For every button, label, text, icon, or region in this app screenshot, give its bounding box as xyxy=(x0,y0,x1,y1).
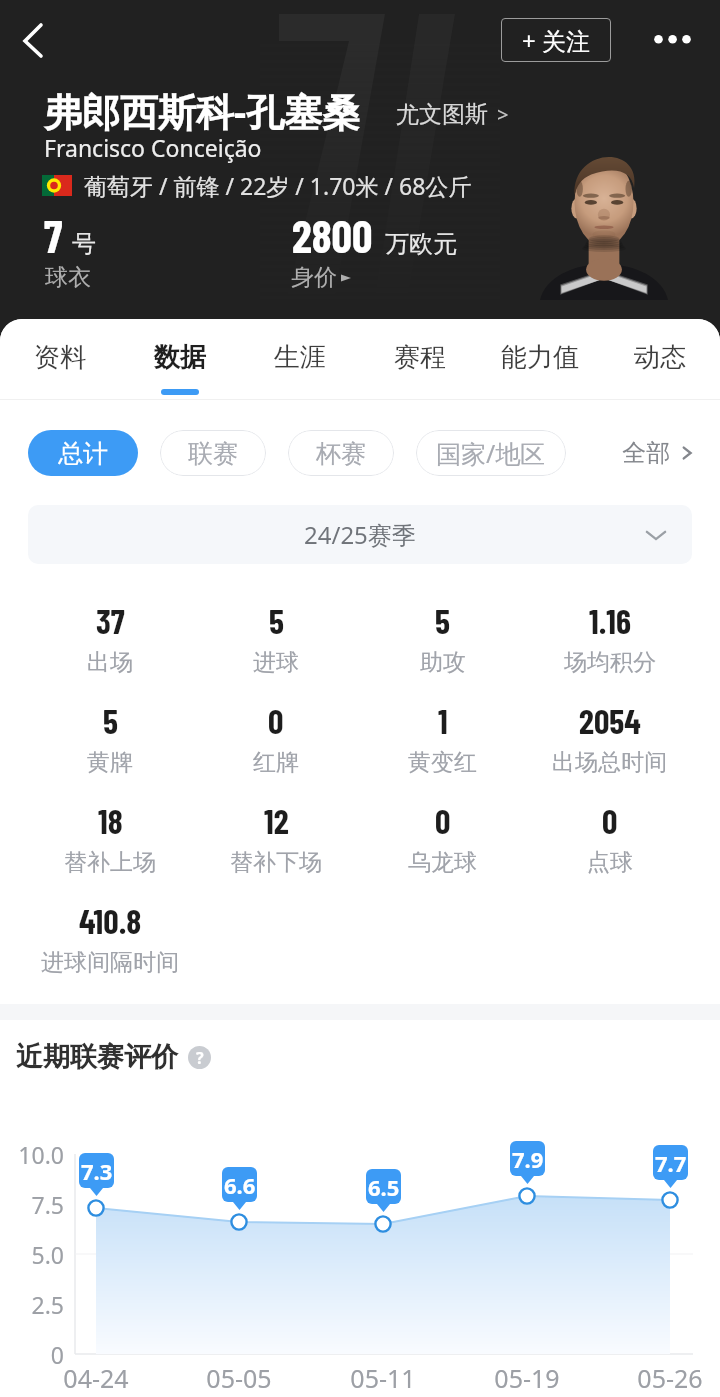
staticText: 6.5 xyxy=(368,1172,400,1202)
staticText: 1 xyxy=(438,700,448,741)
button[interactable]: 尤文图斯 xyxy=(396,100,509,129)
staticText: 乌龙球 xyxy=(408,848,477,877)
staticText: 0 xyxy=(268,700,284,741)
staticText: 黄牌 xyxy=(87,748,133,777)
staticText: 10.0 xyxy=(0,1139,64,1170)
staticText: 2.5 xyxy=(0,1289,64,1320)
staticText: 动态 xyxy=(634,341,686,374)
staticText: 0 xyxy=(435,800,451,841)
staticText: 数据 xyxy=(154,341,206,374)
staticText: 7.9 xyxy=(512,1144,544,1174)
staticText: 2800 xyxy=(292,208,373,262)
staticText: 尤文图斯 xyxy=(396,100,488,129)
staticText: 资料 xyxy=(34,341,86,374)
staticText: 410.8 xyxy=(79,900,142,941)
staticText: 黄变红 xyxy=(408,748,477,777)
staticText: 5 xyxy=(435,600,450,641)
staticText: 出场 xyxy=(87,648,133,677)
staticText: 05-05 xyxy=(184,1361,294,1395)
staticText: ? xyxy=(196,1047,204,1069)
staticText: 5.0 xyxy=(0,1239,64,1270)
staticText: 2054 xyxy=(579,700,641,741)
staticText: 球衣 xyxy=(45,263,91,292)
button[interactable]: 杯赛 xyxy=(288,430,394,476)
button[interactable]: 联赛 xyxy=(160,430,266,476)
button[interactable]: 赛程 xyxy=(360,319,480,400)
staticText: 04-24 xyxy=(41,1361,151,1395)
staticText: 18 xyxy=(98,800,123,841)
staticText: + 关注 xyxy=(522,24,590,57)
staticText: 全部 xyxy=(622,438,670,468)
staticText: 6.6 xyxy=(224,1170,256,1200)
staticText: 替补下场 xyxy=(230,848,322,877)
staticText: 进球 xyxy=(253,648,299,677)
button[interactable]: 总计 xyxy=(28,430,138,476)
staticText: 能力值 xyxy=(501,341,579,374)
button[interactable]: 国家/地区 xyxy=(416,430,566,476)
staticText: 05-26 xyxy=(615,1361,720,1395)
button[interactable]: Back xyxy=(3,17,49,63)
staticText: 身价 xyxy=(291,263,337,292)
staticText: 联赛 xyxy=(188,438,238,469)
staticText: > xyxy=(497,101,509,128)
staticText: 7.7 xyxy=(655,1148,687,1178)
button[interactable]: 动态 xyxy=(600,319,720,400)
staticText: 7 xyxy=(44,208,63,262)
staticText: 红牌 xyxy=(253,748,299,777)
staticText: 05-11 xyxy=(328,1361,438,1395)
staticText: 进球间隔时间 xyxy=(41,948,179,977)
staticText: 5 xyxy=(103,700,118,741)
staticText: 场均积分 xyxy=(564,648,656,677)
staticText: 近期联赛评价 xyxy=(16,1040,178,1074)
staticText: 出场总时间 xyxy=(552,748,667,777)
staticText: 0 xyxy=(602,800,618,841)
staticText: 弗郎西斯科-孔塞桑 xyxy=(44,85,361,137)
staticText: 赛程 xyxy=(394,341,446,374)
button[interactable]: 24/25赛季 xyxy=(28,505,692,564)
staticText: 37 xyxy=(96,600,125,641)
staticText: 12 xyxy=(264,800,289,841)
button[interactable]: + 关注 xyxy=(501,18,611,62)
staticText: 5 xyxy=(269,600,284,641)
staticText: 7.5 xyxy=(0,1189,64,1220)
staticText: Francisco Conceição xyxy=(44,132,262,163)
staticText: 05-19 xyxy=(472,1361,582,1395)
staticText: 号 xyxy=(72,229,96,259)
staticText: 点球 xyxy=(587,848,633,877)
button[interactable]: 能力值 xyxy=(480,319,600,400)
staticText: 国家/地区 xyxy=(436,436,546,470)
staticText: 替补上场 xyxy=(64,848,156,877)
button[interactable]: 资料 xyxy=(0,319,120,400)
button[interactable]: 生涯 xyxy=(240,319,360,400)
staticText: 24/25赛季 xyxy=(304,518,416,551)
button[interactable]: More options xyxy=(644,15,702,63)
staticText: 葡萄牙 / 前锋 / 22岁 / 1.70米 / 68公斤 xyxy=(84,170,472,201)
staticText: 生涯 xyxy=(274,341,326,374)
staticText: 7.3 xyxy=(81,1156,113,1186)
button[interactable]: 数据 xyxy=(120,319,240,400)
staticText: 万欧元 xyxy=(385,229,457,259)
button[interactable]: 全部 xyxy=(622,430,696,476)
button[interactable]: 身价 xyxy=(291,263,351,292)
button[interactable]: Help xyxy=(188,1046,211,1069)
staticText: 1.16 xyxy=(589,600,631,641)
staticText: 助攻 xyxy=(420,648,466,677)
staticText: 总计 xyxy=(58,438,108,469)
staticText: 0 xyxy=(0,1339,64,1370)
staticText: 杯赛 xyxy=(316,438,366,469)
